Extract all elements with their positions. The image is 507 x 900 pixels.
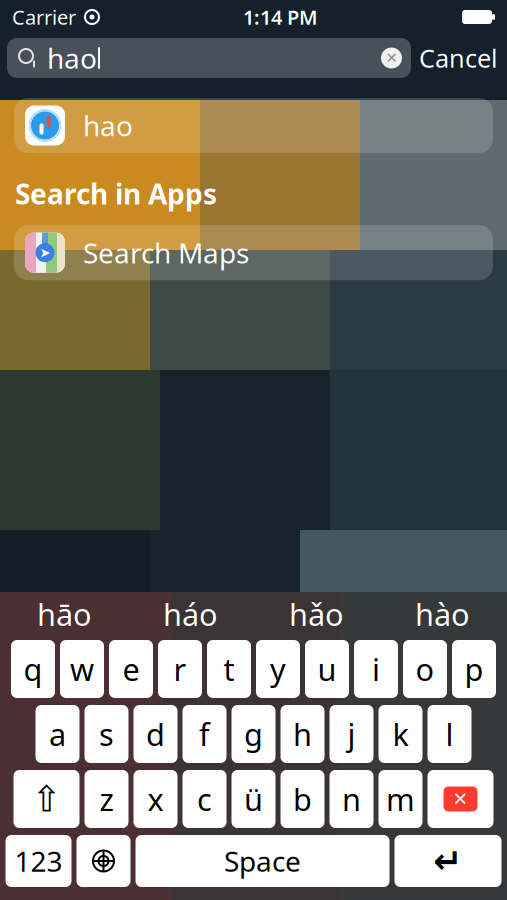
staticText: Space	[224, 842, 301, 880]
staticText: Search in Apps	[15, 175, 217, 212]
button[interactable]: háo	[127, 592, 253, 636]
button[interactable]: h	[280, 705, 324, 763]
button[interactable]: hao	[14, 98, 493, 153]
button[interactable]: hāo	[1, 592, 127, 636]
staticText: ➤	[39, 245, 50, 260]
button[interactable]: Shift	[13, 770, 79, 828]
button[interactable]: u	[305, 640, 349, 698]
button[interactable]: w	[60, 640, 104, 698]
button[interactable]: k	[378, 705, 422, 763]
staticText: f	[199, 714, 210, 754]
button[interactable]: ➤	[14, 225, 493, 280]
staticText: hao	[83, 107, 133, 144]
staticText: u	[317, 649, 336, 689]
button[interactable]: Return	[394, 835, 501, 887]
button[interactable]: 123	[5, 835, 71, 887]
button[interactable]: o	[403, 640, 447, 698]
staticText: w	[70, 649, 94, 689]
staticText: hǎo	[289, 594, 344, 634]
button[interactable]: s	[84, 705, 128, 763]
staticText: y	[270, 649, 286, 689]
staticText: Search Maps	[83, 234, 249, 271]
button[interactable]: z	[84, 770, 128, 828]
button[interactable]: f	[182, 705, 226, 763]
staticText: q	[23, 649, 42, 689]
staticText: b	[293, 779, 312, 819]
button[interactable]: l	[427, 705, 471, 763]
button[interactable]: j	[329, 705, 373, 763]
staticText: r	[173, 649, 186, 689]
staticText: d	[146, 714, 165, 754]
staticText: háo	[163, 594, 218, 634]
button[interactable]: p	[452, 640, 496, 698]
staticText: o	[415, 649, 434, 689]
staticText: j	[347, 714, 355, 754]
staticText: hāo	[37, 594, 92, 634]
staticText: Cancel	[419, 41, 498, 75]
button[interactable]: Next keyboard	[76, 835, 130, 887]
button[interactable]: Cancel	[411, 38, 506, 78]
staticText: ✕	[452, 788, 468, 810]
button[interactable]: c	[182, 770, 226, 828]
staticText: g	[244, 714, 263, 754]
staticText: ↵	[433, 841, 462, 881]
button[interactable]: hào	[379, 592, 505, 636]
button[interactable]: r	[158, 640, 202, 698]
button[interactable]: x	[133, 770, 177, 828]
button[interactable]: q	[11, 640, 55, 698]
staticText: ✕	[385, 50, 397, 66]
button[interactable]: ü	[231, 770, 275, 828]
staticText: n	[342, 779, 361, 819]
staticText: z	[99, 779, 113, 819]
button[interactable]: a	[35, 705, 79, 763]
staticText: h	[293, 714, 312, 754]
button[interactable]: g	[231, 705, 275, 763]
staticText: c	[197, 779, 212, 819]
button[interactable]: Delete	[427, 770, 493, 828]
button[interactable]: y	[256, 640, 300, 698]
staticText: ü	[244, 779, 263, 819]
staticText: l	[445, 714, 453, 754]
button[interactable]: e	[109, 640, 153, 698]
button[interactable]: n	[329, 770, 373, 828]
button[interactable]: b	[280, 770, 324, 828]
button[interactable]: hǎo	[253, 592, 379, 636]
staticText: m	[386, 779, 415, 819]
staticText: i	[372, 649, 380, 689]
staticText: ⇧	[31, 779, 61, 819]
staticText: x	[147, 779, 163, 819]
button[interactable]: t	[207, 640, 251, 698]
button[interactable]: hao	[7, 38, 411, 78]
staticText: hào	[415, 594, 470, 634]
staticText: k	[392, 714, 408, 754]
button[interactable]: m	[378, 770, 422, 828]
button[interactable]: d	[133, 705, 177, 763]
staticText: s	[99, 714, 114, 754]
button[interactable]: Space	[135, 835, 389, 887]
staticText: 123	[14, 842, 62, 880]
staticText: Carrier	[12, 4, 76, 30]
staticText: a	[49, 714, 66, 754]
staticText: p	[464, 649, 483, 689]
staticText: t	[223, 649, 234, 689]
staticText: e	[122, 649, 139, 689]
staticText: hao	[47, 39, 97, 77]
staticText: 1:14 PM	[243, 4, 318, 30]
button[interactable]: i	[354, 640, 398, 698]
